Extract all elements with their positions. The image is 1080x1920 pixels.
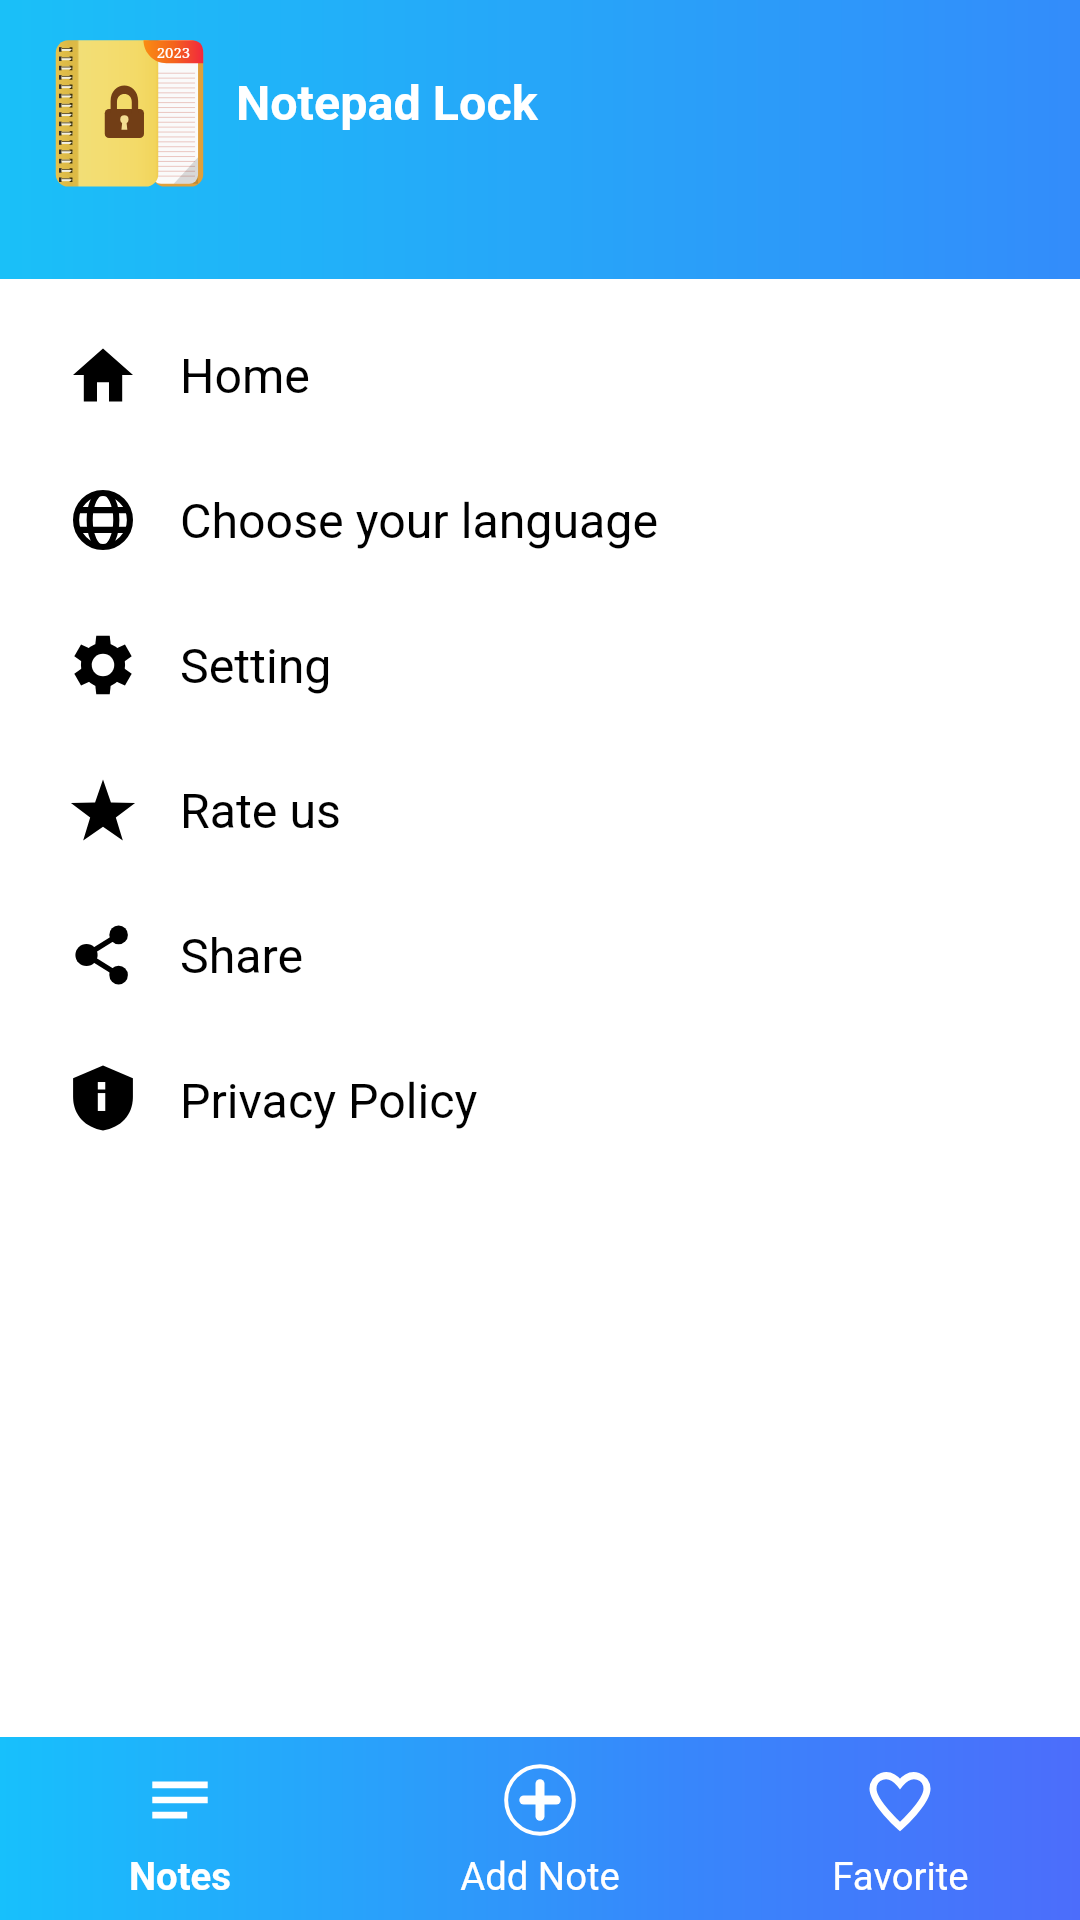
button[interactable]: Notes bbox=[0, 1737, 360, 1920]
button[interactable]: Setting bbox=[0, 592, 1080, 737]
button[interactable]: Rate us bbox=[0, 737, 1080, 882]
staticText: Home bbox=[180, 348, 310, 405]
staticText: Privacy Policy bbox=[180, 1073, 478, 1130]
other: Favorite bbox=[864, 1764, 936, 1836]
button[interactable]: Home bbox=[0, 302, 1080, 447]
staticText: Choose your language bbox=[180, 493, 659, 550]
staticText: Notes bbox=[129, 1854, 231, 1899]
staticText: Share bbox=[180, 928, 304, 985]
button[interactable]: Choose your language bbox=[0, 447, 1080, 592]
staticText: Setting bbox=[180, 638, 332, 695]
button[interactable]: Favorite bbox=[720, 1737, 1080, 1920]
button[interactable]: Privacy Policy bbox=[0, 1027, 1080, 1172]
staticText: Favorite bbox=[832, 1854, 969, 1899]
staticText: Rate us bbox=[180, 783, 341, 840]
other: Notes bbox=[144, 1764, 216, 1836]
staticText: Add Note bbox=[460, 1854, 620, 1899]
button[interactable]: Share bbox=[0, 882, 1080, 1027]
other: Add Note bbox=[504, 1764, 576, 1836]
button[interactable]: Add Note bbox=[360, 1737, 720, 1920]
staticText: Notepad Lock bbox=[236, 75, 538, 132]
